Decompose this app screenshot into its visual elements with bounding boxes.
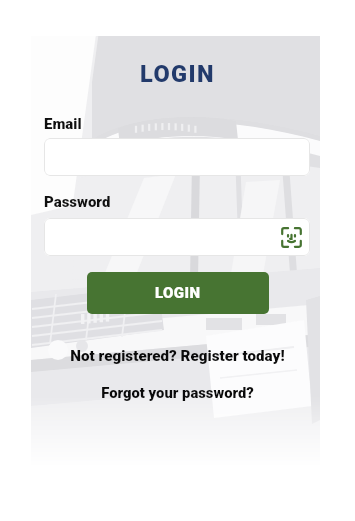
button[interactable]: LOGIN [87, 272, 269, 314]
staticText: LOGIN [155, 284, 201, 302]
button[interactable]: Password input field [44, 218, 310, 256]
staticText: LOGIN [0, 60, 355, 521]
staticText: Email [44, 115, 82, 133]
button[interactable]: Sign in with Face ID [281, 227, 302, 248]
staticText: Not registered? Register today! [0, 347, 355, 521]
staticText: Forgot your password? [0, 384, 355, 521]
staticText: Password [44, 193, 111, 211]
button[interactable]: Forgot your password? [0, 384, 355, 521]
button[interactable]: Email input field [44, 138, 310, 176]
button[interactable]: Not registered? Register today! [0, 347, 355, 521]
